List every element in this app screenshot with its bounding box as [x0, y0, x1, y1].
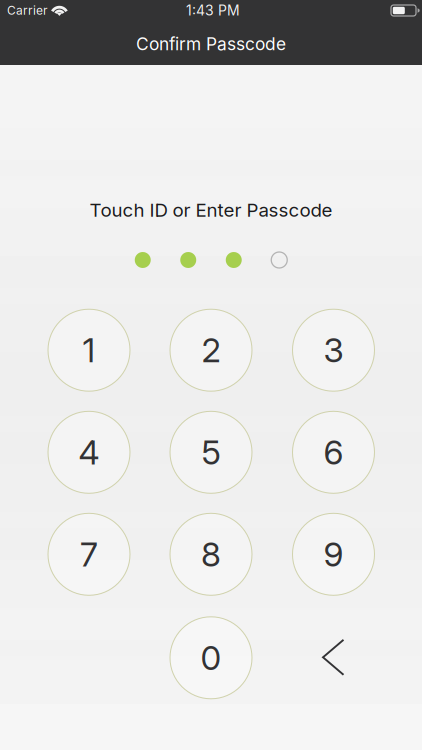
staticText: 7	[80, 534, 98, 574]
staticText: Confirm Passcode	[136, 33, 286, 54]
button[interactable]: 6	[287, 406, 379, 498]
button[interactable]: 2	[165, 304, 257, 396]
button[interactable]: 3	[287, 304, 379, 396]
button[interactable]: 8	[165, 508, 257, 600]
button[interactable]: 9	[287, 508, 379, 600]
staticText: 2	[201, 330, 220, 370]
staticText: 1:43 PM	[186, 2, 240, 19]
button[interactable]: 1	[43, 304, 135, 396]
button[interactable]: 7	[43, 508, 135, 600]
staticText: 0	[200, 638, 221, 678]
button[interactable]: Delete	[287, 612, 379, 704]
staticText: Carrier	[7, 3, 48, 18]
staticText: 9	[323, 534, 343, 574]
staticText: Touch ID or Enter Passcode	[89, 199, 332, 221]
button[interactable]: 4	[43, 406, 135, 498]
staticText: 4	[78, 432, 99, 472]
button[interactable]: 0	[165, 612, 257, 704]
staticText: 3	[323, 330, 343, 370]
staticText: 6	[323, 432, 343, 472]
staticText: 8	[201, 534, 221, 574]
staticText: 1	[82, 330, 95, 370]
button[interactable]: 5	[165, 406, 257, 498]
staticText: 5	[201, 432, 220, 472]
